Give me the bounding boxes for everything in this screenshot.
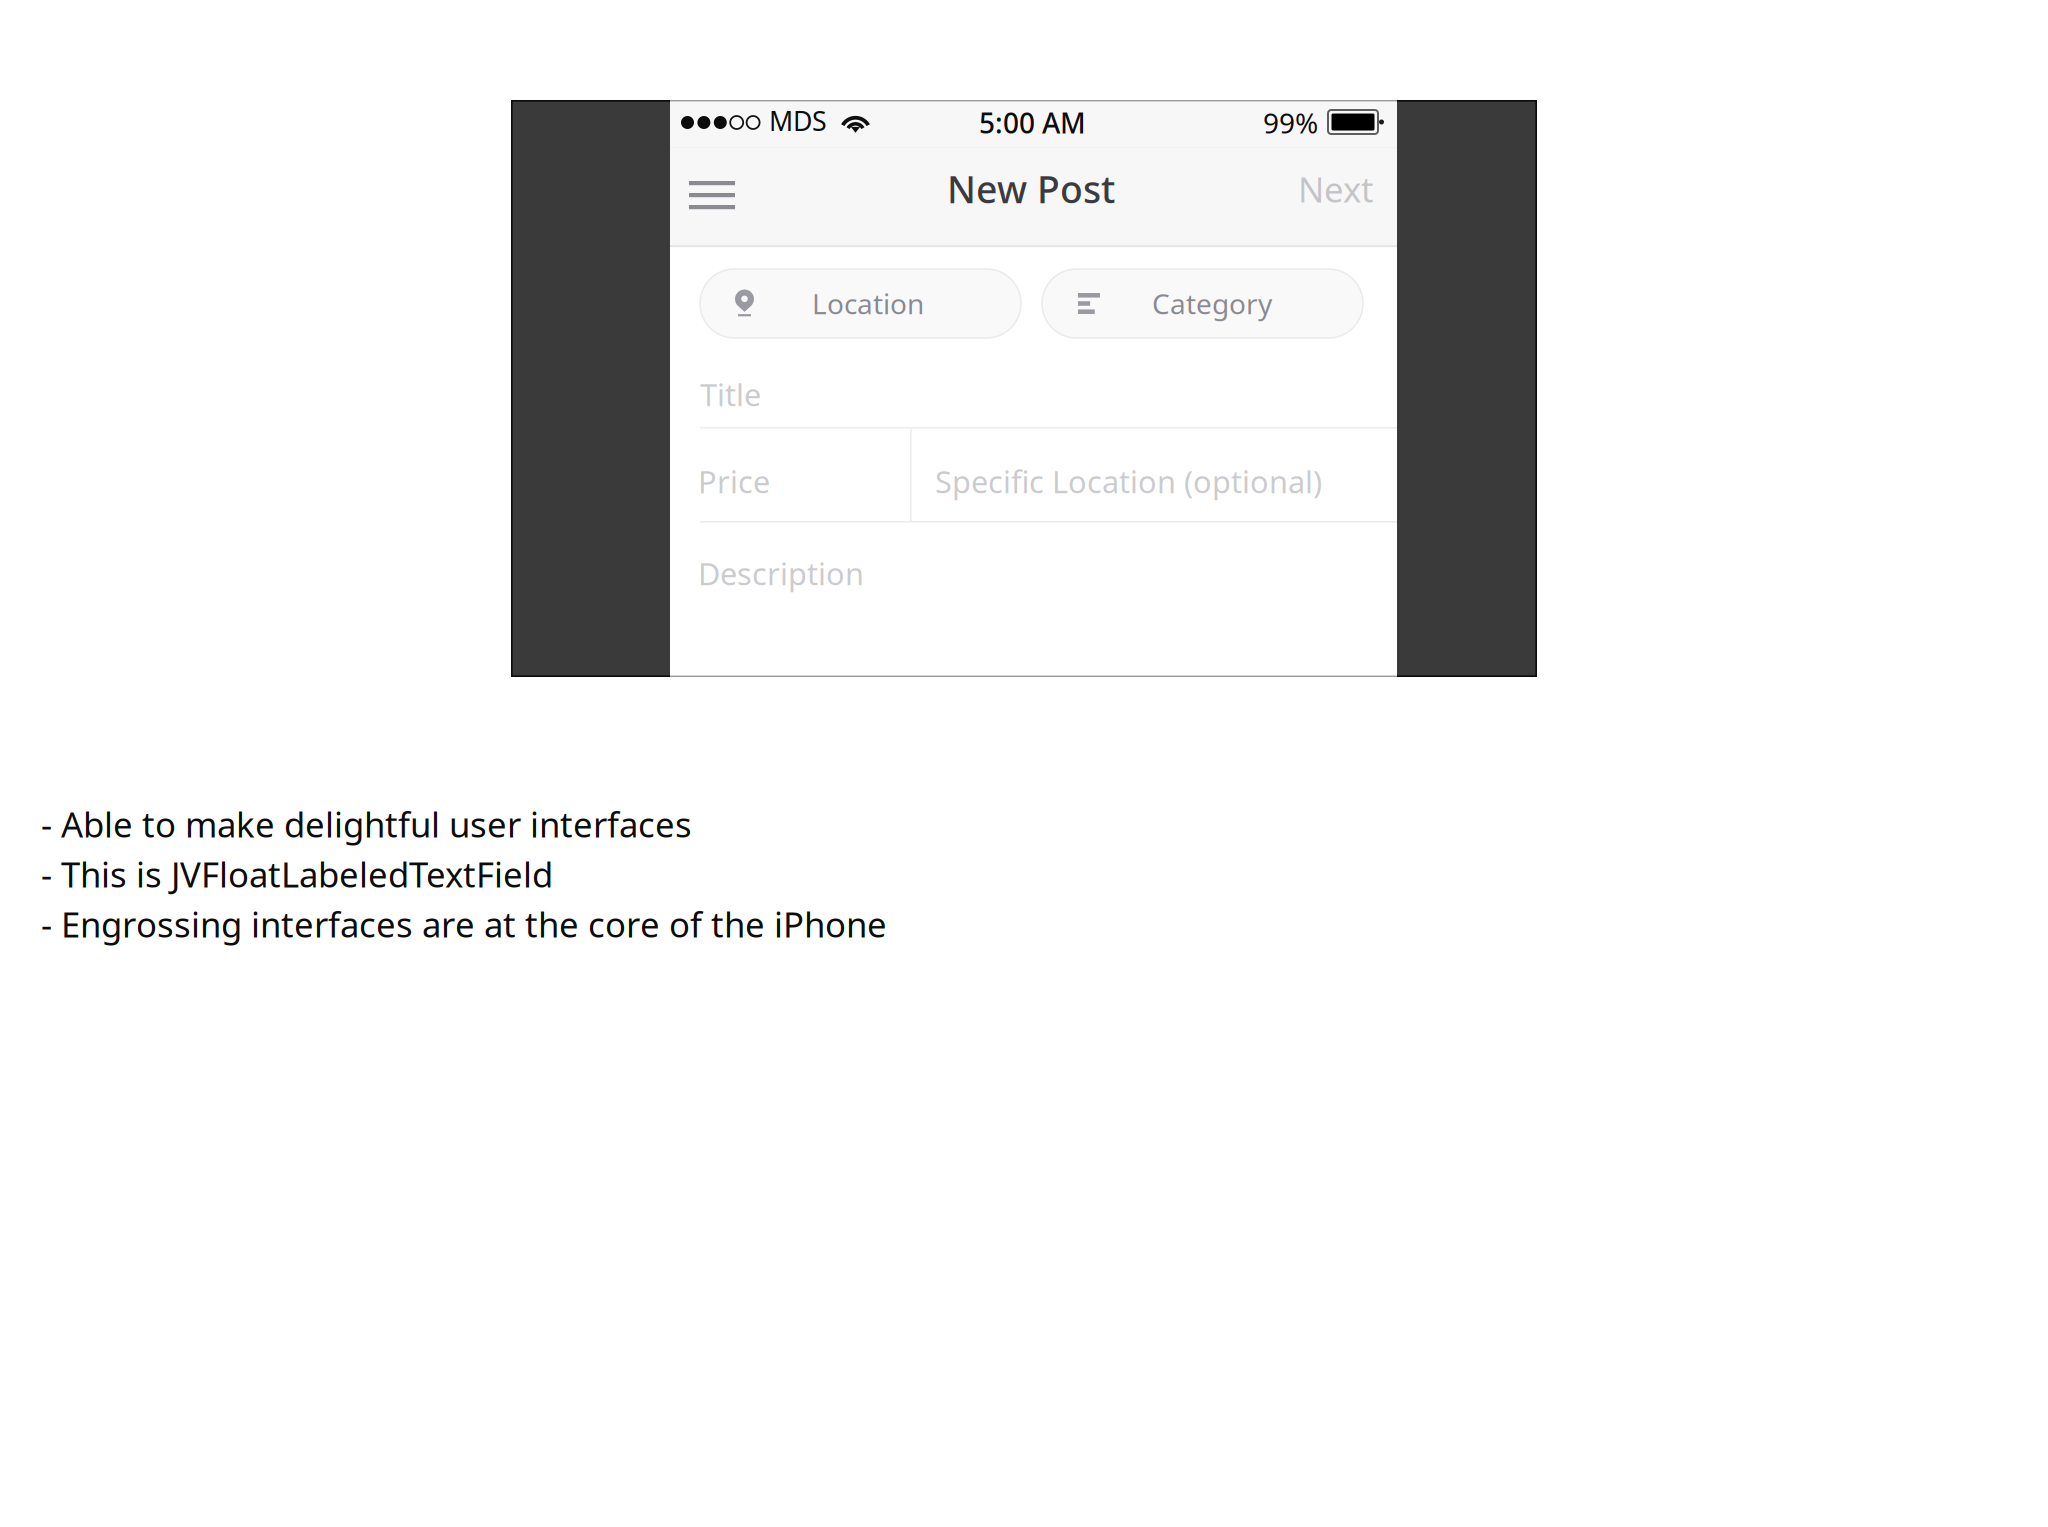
staticText: New Post bbox=[947, 164, 1115, 214]
button[interactable]: Menu bbox=[672, 147, 752, 231]
staticText: Description bbox=[698, 553, 864, 594]
staticText: Category bbox=[1152, 285, 1272, 322]
staticText: 5:00 AM bbox=[979, 104, 1086, 141]
staticText: Location bbox=[812, 285, 924, 322]
staticText: - This is JVFloatLabeledTextField bbox=[41, 851, 553, 897]
staticText: Price bbox=[698, 461, 770, 502]
staticText: Specific Location (optional) bbox=[935, 461, 1322, 502]
staticText: - Able to make delightful user interface… bbox=[41, 801, 692, 847]
button[interactable]: Location bbox=[700, 269, 1021, 338]
staticText: Next bbox=[1298, 166, 1374, 212]
staticText: Title bbox=[700, 374, 761, 415]
button[interactable]: Category bbox=[1042, 269, 1363, 338]
button[interactable]: Next bbox=[1278, 146, 1394, 232]
staticText: 99% bbox=[1263, 104, 1318, 141]
staticText: MDS bbox=[769, 103, 827, 138]
staticText: - Engrossing interfaces are at the core … bbox=[41, 901, 887, 947]
